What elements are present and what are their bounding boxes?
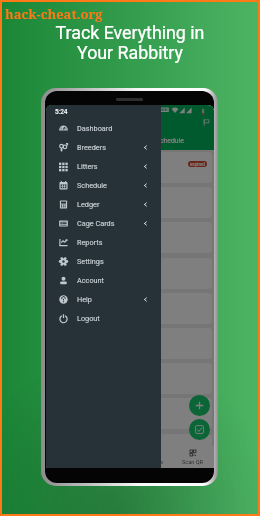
button[interactable]: Logout bbox=[46, 309, 161, 328]
staticText: 5:24 bbox=[55, 108, 68, 116]
staticText: Schedule bbox=[156, 137, 184, 145]
button[interactable] bbox=[49, 398, 212, 429]
button[interactable]: Scan QR bbox=[172, 446, 214, 468]
button[interactable] bbox=[49, 222, 212, 253]
button[interactable] bbox=[49, 363, 212, 394]
staticText: Help bbox=[77, 295, 92, 304]
staticText: Account bbox=[77, 276, 104, 285]
button[interactable]: Cage Cards bbox=[46, 214, 161, 233]
staticText: Track Everything in Your Rabbitry bbox=[0, 22, 260, 63]
button[interactable]: Breeders bbox=[46, 138, 161, 157]
button[interactable]: Dashboard bbox=[46, 119, 161, 138]
staticText: Settings bbox=[77, 257, 104, 266]
button[interactable]: expired bbox=[49, 152, 212, 183]
button[interactable]: Tasks bbox=[189, 419, 210, 440]
button[interactable]: Add bbox=[189, 395, 210, 416]
button[interactable]: Litters bbox=[46, 157, 161, 176]
staticText: Schedule bbox=[140, 459, 163, 466]
button[interactable]: Schedule bbox=[46, 176, 161, 195]
staticText: Schedule bbox=[77, 181, 107, 190]
button[interactable]: Reports bbox=[46, 233, 161, 252]
button[interactable]: Ledger bbox=[46, 195, 161, 214]
button[interactable] bbox=[49, 328, 212, 359]
button[interactable]: Help bbox=[46, 290, 161, 309]
staticText: Ledger bbox=[77, 200, 100, 209]
staticText: Litters bbox=[77, 162, 98, 171]
button[interactable] bbox=[49, 187, 212, 218]
button[interactable]: Schedule bbox=[130, 446, 172, 468]
button[interactable]: Account bbox=[46, 271, 161, 290]
button[interactable] bbox=[49, 258, 212, 289]
staticText: hack-cheat.org bbox=[5, 5, 103, 23]
staticText: Logout bbox=[77, 314, 100, 323]
staticText: Cage Cards bbox=[77, 219, 115, 228]
button[interactable] bbox=[49, 434, 212, 446]
staticText: Reports bbox=[77, 238, 103, 247]
button[interactable]: Settings bbox=[46, 252, 161, 271]
staticText: Dashboard bbox=[77, 124, 113, 133]
button[interactable]: Flag filter bbox=[198, 114, 214, 131]
staticText: Breeders bbox=[77, 143, 106, 152]
staticText: expired bbox=[190, 162, 205, 167]
button[interactable] bbox=[49, 293, 212, 324]
staticText: Scan QR bbox=[182, 459, 204, 466]
